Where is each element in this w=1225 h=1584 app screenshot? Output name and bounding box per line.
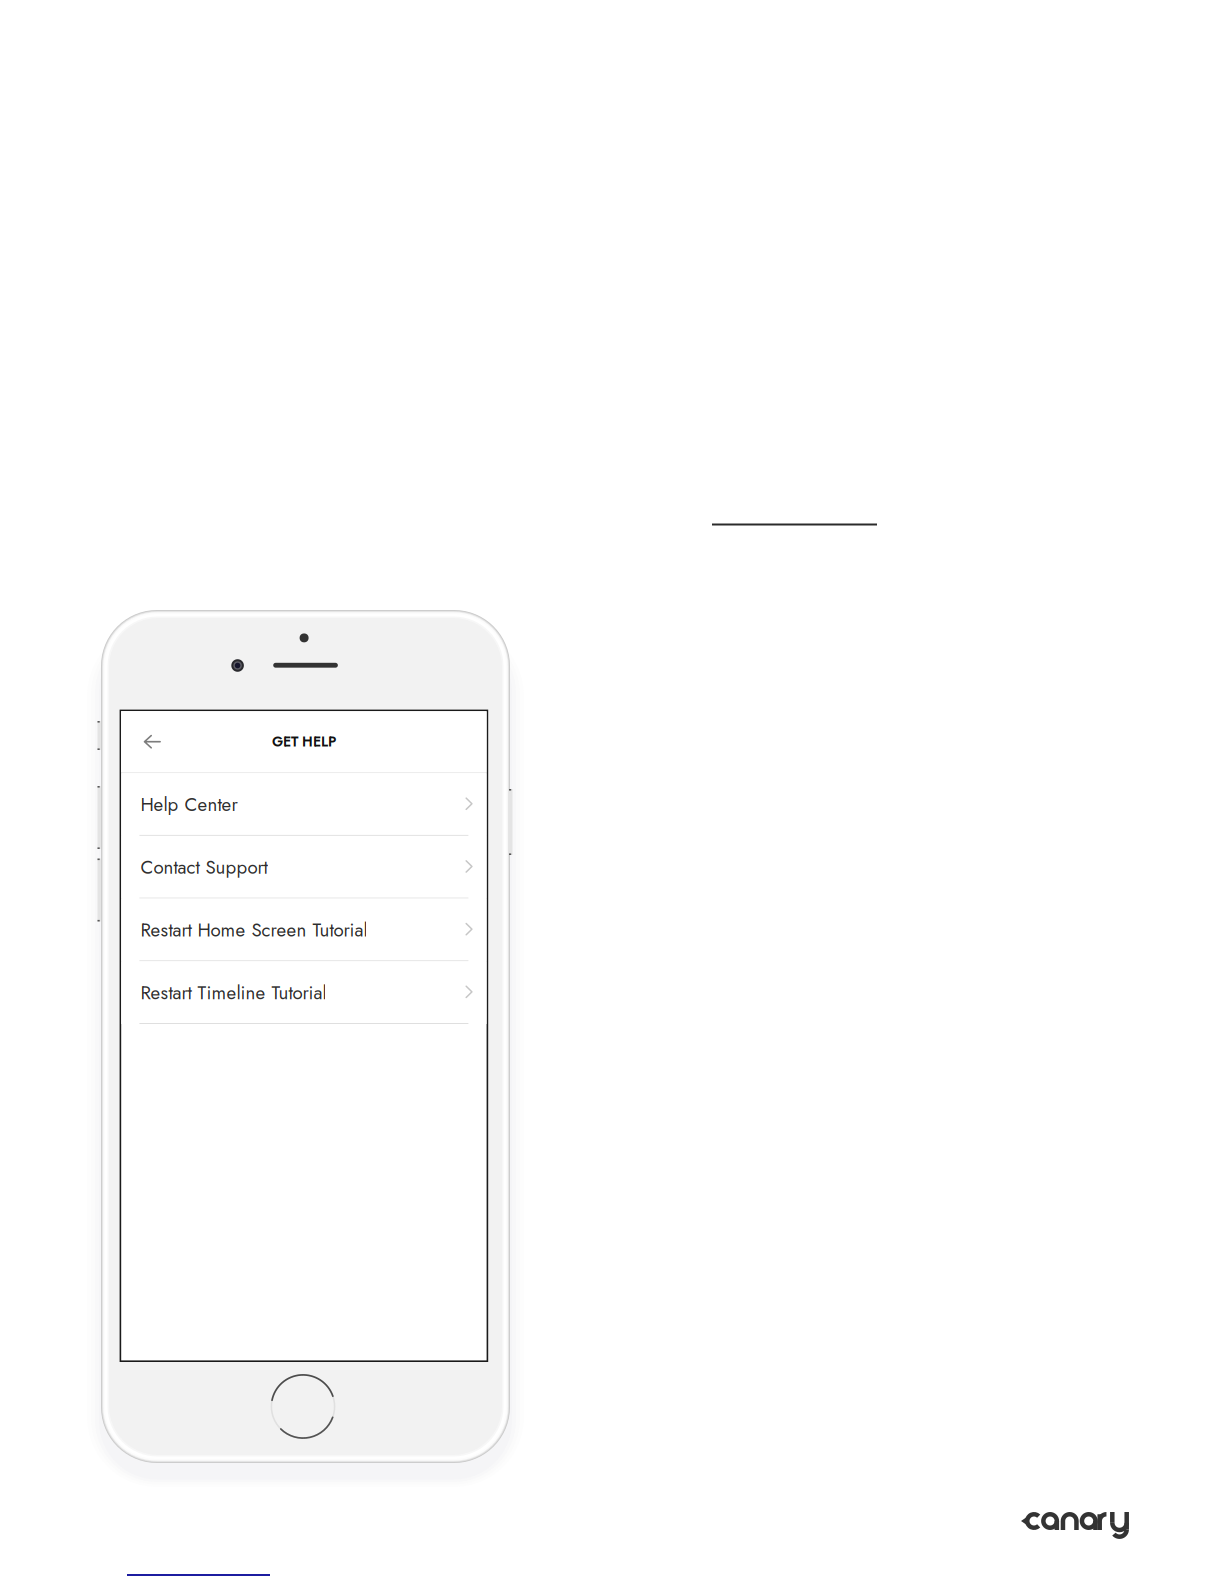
button[interactable]: Contact Support	[121, 836, 487, 899]
staticText: Contact Support	[140, 854, 267, 881]
button[interactable]: Back	[121, 711, 179, 772]
staticText: Restart Timeline Tutorial	[140, 979, 326, 1006]
button[interactable]: Help Center	[121, 773, 487, 836]
staticText: Help Center	[140, 791, 237, 818]
staticText: GET HELP	[272, 732, 336, 752]
staticText: Restart Home Screen Tutorial	[140, 916, 367, 943]
button[interactable]: Restart Timeline Tutorial	[121, 961, 487, 1024]
button[interactable]: Restart Home Screen Tutorial	[121, 899, 487, 961]
